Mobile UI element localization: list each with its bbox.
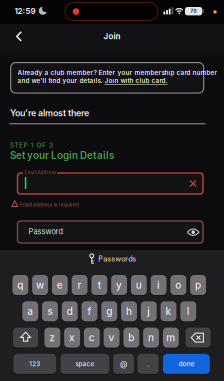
staticText: t — [98, 279, 101, 291]
staticText: Email address is required — [20, 202, 79, 207]
staticText: r — [78, 279, 82, 291]
button[interactable]: o — [170, 275, 186, 295]
staticText: l — [187, 305, 190, 317]
staticText: z — [49, 332, 55, 343]
staticText: STEP 1 OF 3 — [10, 141, 53, 149]
button[interactable] — [13, 328, 38, 348]
staticText: h — [126, 305, 132, 317]
staticText: n — [148, 332, 154, 343]
staticText: Set your Login Details — [10, 150, 114, 161]
staticText: and we'll find your details. — [17, 77, 104, 84]
staticText: Join with club card. — [104, 77, 167, 84]
staticText: done — [178, 360, 194, 368]
button[interactable]: z — [44, 328, 60, 348]
staticText: Already a club member? Enter your member… — [17, 69, 217, 76]
staticText: f — [87, 305, 91, 317]
staticText: g — [106, 305, 112, 317]
button[interactable]: h — [121, 301, 137, 321]
button[interactable]: space — [60, 354, 109, 374]
button[interactable]: y — [111, 275, 127, 295]
button[interactable]: Join with club card. — [104, 77, 167, 84]
staticText: w — [36, 279, 44, 291]
staticText: Join — [103, 32, 120, 41]
button[interactable]: v — [104, 328, 120, 348]
staticText: i — [157, 279, 160, 291]
button[interactable]: d — [62, 301, 78, 321]
button[interactable]: u — [131, 275, 147, 295]
button[interactable]: 123 — [13, 354, 56, 374]
button[interactable]: r — [72, 275, 88, 295]
button[interactable]: Passwords — [88, 253, 136, 265]
staticText: 70 — [191, 8, 197, 14]
staticText: a — [27, 305, 33, 317]
button[interactable]: q — [12, 275, 28, 295]
button[interactable]: t — [91, 275, 107, 295]
staticText: x — [69, 332, 75, 343]
staticText: d — [67, 305, 73, 317]
staticText: j — [147, 305, 150, 317]
button[interactable]: Show password — [0, 0, 224, 381]
button[interactable]: n — [143, 328, 159, 348]
button[interactable]: . — [137, 354, 159, 374]
staticText: Email Address — [24, 170, 55, 175]
button[interactable]: j — [141, 301, 157, 321]
staticText: q — [17, 279, 23, 291]
staticText: o — [175, 279, 181, 291]
button[interactable]: w — [32, 275, 48, 295]
button[interactable]: i — [151, 275, 167, 295]
staticText: 12:59 — [14, 6, 35, 16]
button[interactable]: f — [81, 301, 97, 321]
button[interactable]: c — [84, 328, 100, 348]
button[interactable]: m — [163, 328, 179, 348]
staticText: v — [109, 332, 115, 343]
staticText: y — [116, 279, 122, 291]
staticText: m — [166, 332, 175, 343]
staticText: e — [57, 279, 63, 291]
staticText: You're almost there — [10, 108, 89, 118]
staticText: k — [165, 305, 171, 317]
staticText: @ — [120, 359, 127, 368]
staticText: Password — [28, 227, 63, 236]
staticText: u — [136, 279, 142, 291]
button[interactable]: Back — [0, 0, 24, 24]
button[interactable]: x — [64, 328, 80, 348]
button[interactable]: k — [161, 301, 176, 321]
staticText: . — [147, 359, 149, 368]
button[interactable]: @ — [113, 354, 134, 374]
button[interactable]: s — [42, 301, 58, 321]
button[interactable]: l — [180, 301, 196, 321]
staticText: s — [47, 305, 52, 317]
staticText: 123 — [29, 360, 40, 367]
button[interactable]: b — [123, 328, 139, 348]
button[interactable]: a — [22, 301, 38, 321]
staticText: c — [89, 332, 95, 343]
button[interactable]: e — [52, 275, 68, 295]
staticText: Passwords — [98, 255, 136, 263]
staticText: p — [195, 279, 201, 291]
button[interactable] — [185, 328, 211, 348]
staticText: b — [128, 332, 134, 343]
button[interactable]: g — [101, 301, 117, 321]
button[interactable]: p — [190, 275, 206, 295]
button[interactable]: done — [163, 354, 210, 374]
staticText: space — [75, 360, 94, 367]
